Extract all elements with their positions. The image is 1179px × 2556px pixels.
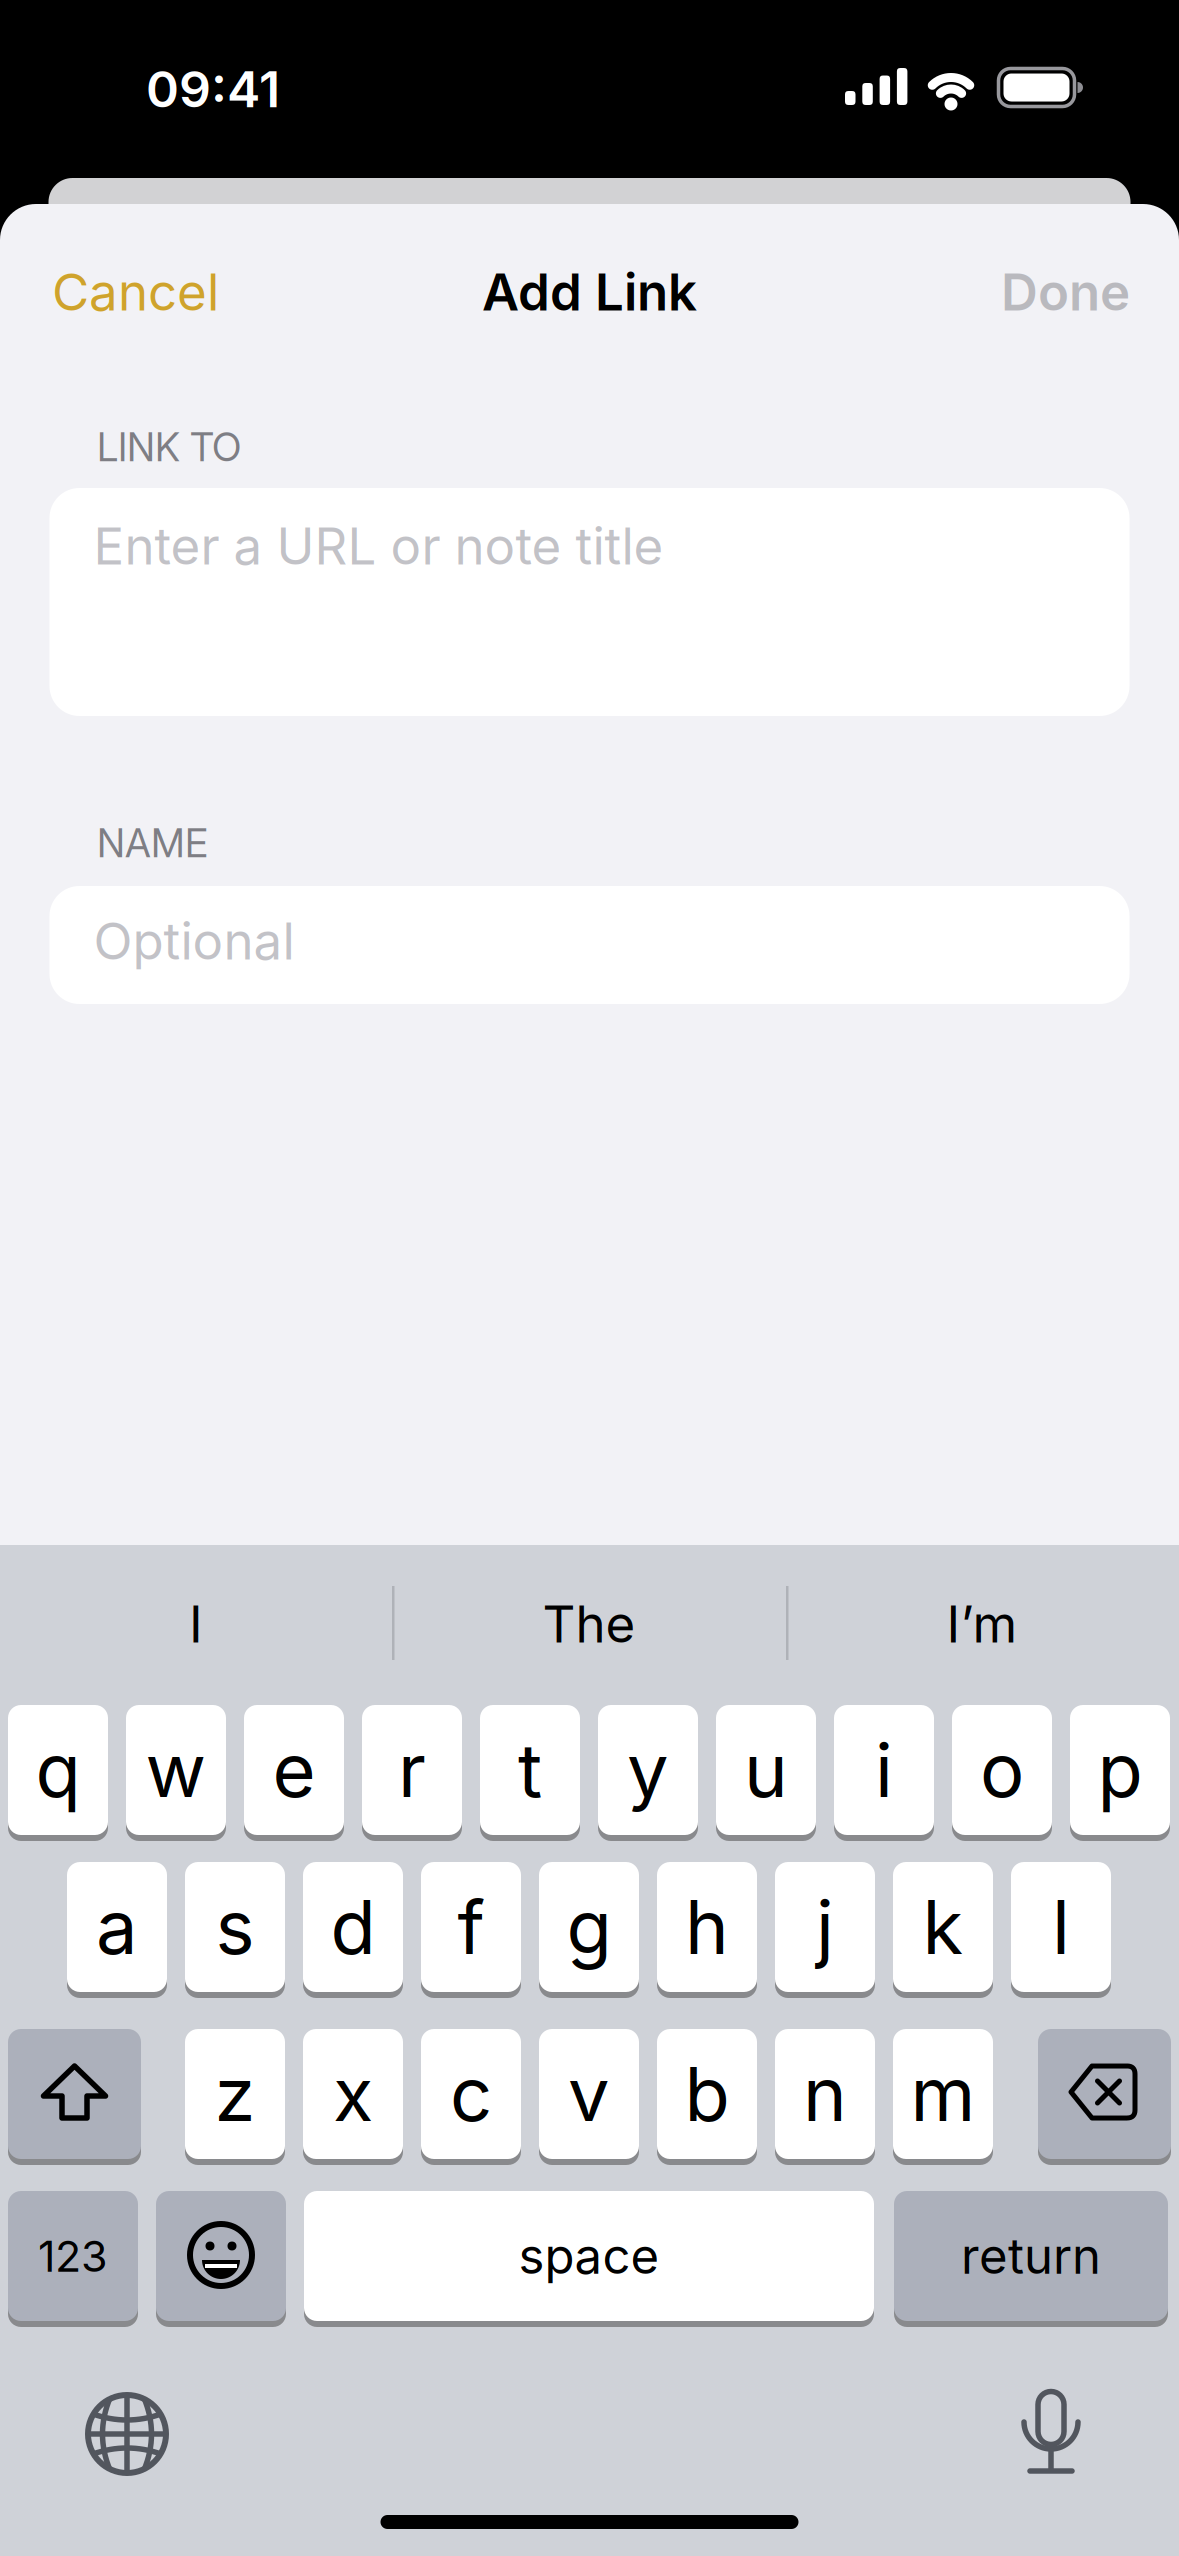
staticText: w: [145, 1725, 206, 1815]
button[interactable]: The: [399, 1549, 779, 1699]
staticText: p: [1097, 1725, 1142, 1815]
staticText: b: [684, 2049, 729, 2139]
staticText: k: [922, 1882, 963, 1972]
staticText: e: [272, 1725, 315, 1815]
button[interactable]: r: [362, 1705, 462, 1839]
button[interactable]: m: [893, 2029, 993, 2163]
staticText: 123: [38, 2230, 108, 2282]
staticText: x: [333, 2049, 373, 2139]
button[interactable]: return: [894, 2191, 1168, 2325]
button[interactable]: space: [304, 2191, 874, 2325]
staticText: 09:41: [146, 59, 280, 119]
staticText: l: [1052, 1882, 1070, 1972]
staticText: i: [875, 1725, 893, 1815]
button[interactable]: Cancel: [52, 261, 219, 323]
staticText: a: [96, 1882, 138, 1972]
button[interactable]: v: [539, 2029, 639, 2163]
button[interactable]: s: [185, 1862, 285, 1996]
staticText: o: [980, 1725, 1024, 1815]
staticText: Add Link: [482, 261, 697, 323]
staticText: space: [518, 2226, 659, 2286]
button[interactable]: n: [775, 2029, 875, 2163]
button[interactable]: f: [421, 1862, 521, 1996]
button[interactable]: a: [67, 1862, 167, 1996]
staticText: m: [910, 2049, 975, 2139]
staticText: n: [803, 2049, 847, 2139]
staticText: Cancel: [52, 261, 219, 323]
staticText: v: [568, 2049, 610, 2139]
button[interactable]: o: [952, 1705, 1052, 1839]
button[interactable]: I: [6, 1549, 386, 1699]
button[interactable]: Next keyboard: [67, 2374, 187, 2494]
button[interactable]: u: [716, 1705, 816, 1839]
button[interactable]: b: [657, 2029, 757, 2163]
button[interactable]: w: [126, 1705, 226, 1839]
staticText: q: [35, 1725, 80, 1815]
staticText: d: [330, 1882, 375, 1972]
staticText: c: [450, 2049, 492, 2139]
staticText: I: [189, 1593, 203, 1655]
staticText: f: [457, 1882, 484, 1972]
button[interactable]: Shift: [8, 2029, 141, 2163]
staticText: r: [398, 1725, 426, 1815]
staticText: Done: [1001, 261, 1130, 323]
staticText: h: [685, 1882, 729, 1972]
staticText: u: [744, 1725, 788, 1815]
button[interactable]: q: [8, 1705, 108, 1839]
staticText: I’m: [946, 1593, 1017, 1655]
staticText: LINK TO: [97, 423, 241, 471]
staticText: y: [627, 1725, 669, 1815]
button[interactable]: l: [1011, 1862, 1111, 1996]
button[interactable]: z: [185, 2029, 285, 2163]
staticText: s: [215, 1882, 254, 1972]
button[interactable]: p: [1070, 1705, 1170, 1839]
button[interactable]: Delete: [1038, 2029, 1171, 2163]
button[interactable]: I’m: [792, 1549, 1172, 1699]
button[interactable]: 123: [8, 2191, 138, 2325]
staticText: z: [214, 2049, 255, 2139]
staticText: g: [566, 1882, 611, 1972]
button[interactable]: c: [421, 2029, 521, 2163]
button[interactable]: y: [598, 1705, 698, 1839]
button[interactable]: Dictation: [991, 2372, 1111, 2492]
button[interactable]: j: [775, 1862, 875, 1996]
staticText: j: [816, 1882, 834, 1972]
staticText: t: [518, 1725, 542, 1815]
button[interactable]: Emoji: [156, 2191, 286, 2325]
button[interactable]: Link to: [49, 488, 1129, 716]
button[interactable]: e: [244, 1705, 344, 1839]
staticText: The: [542, 1593, 635, 1655]
staticText: return: [961, 2226, 1101, 2286]
button[interactable]: k: [893, 1862, 993, 1996]
staticText: Enter a URL or note title: [93, 515, 663, 577]
button[interactable]: d: [303, 1862, 403, 1996]
button[interactable]: Name: [49, 886, 1129, 1004]
button[interactable]: t: [480, 1705, 580, 1839]
staticText: NAME: [97, 819, 208, 867]
button[interactable]: i: [834, 1705, 934, 1839]
button[interactable]: h: [657, 1862, 757, 1996]
staticText: Optional: [93, 910, 294, 972]
button[interactable]: g: [539, 1862, 639, 1996]
button[interactable]: Done: [1001, 261, 1130, 323]
button[interactable]: x: [303, 2029, 403, 2163]
